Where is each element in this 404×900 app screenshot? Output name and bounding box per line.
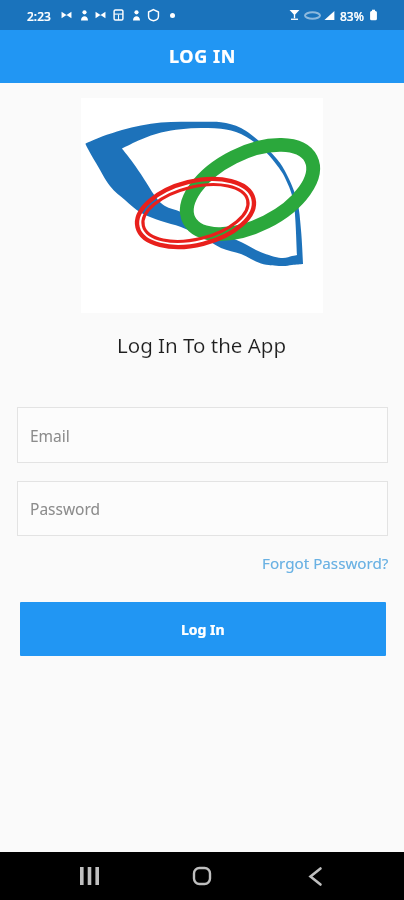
button[interactable]: Log In [20, 602, 386, 656]
button[interactable]: Home [174, 852, 230, 900]
staticText: 2:23 [27, 8, 51, 24]
staticText: Log In [181, 620, 225, 639]
staticText: Password [30, 498, 101, 519]
button[interactable]: Recent apps [61, 852, 117, 900]
staticText: Log In To the App [117, 331, 287, 359]
staticText: Email [30, 425, 70, 446]
button[interactable]: Password [17, 481, 388, 536]
button[interactable]: Forgot Password? [262, 551, 389, 575]
button[interactable]: Email [17, 407, 388, 463]
button[interactable]: Back [287, 852, 343, 900]
staticText: Forgot Password? [262, 553, 389, 574]
staticText: 83% [340, 8, 364, 24]
staticText: LOG IN [169, 44, 236, 69]
